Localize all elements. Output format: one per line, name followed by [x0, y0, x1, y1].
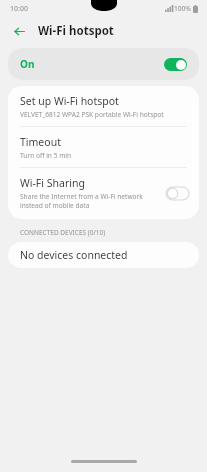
button[interactable]: On	[8, 48, 199, 80]
staticText: No devices connected	[20, 248, 128, 262]
staticText: Wi-Fi hotspot	[38, 23, 114, 39]
staticText: VELVET_6812 WPA2 PSK portable Wi-Fi hots…	[20, 110, 164, 119]
staticText: Set up Wi-Fi hotspot	[20, 94, 119, 108]
staticText: On	[20, 57, 35, 71]
button[interactable]: Back	[10, 22, 28, 40]
staticText: Wi-Fi Sharing	[20, 176, 85, 190]
staticText: CONNECTED DEVICES (0/10)	[20, 228, 106, 237]
staticText: Timeout	[20, 135, 61, 149]
button[interactable]: Wi-Fi Sharing off	[166, 187, 189, 200]
button[interactable]: Set up Wi-Fi hotspot	[8, 86, 199, 126]
button[interactable]: Wi-Fi Sharing	[8, 168, 199, 219]
button[interactable]: No devices connected	[8, 242, 199, 268]
staticText: Share the Internet from a Wi-Fi network …	[20, 192, 160, 210]
button[interactable]: Wi-Fi hotspot on	[164, 58, 187, 71]
staticText: Turn off in 5 min	[20, 151, 72, 160]
staticText: 100%	[174, 4, 191, 13]
button[interactable]: Timeout	[8, 127, 199, 167]
staticText: 10:00	[10, 4, 28, 14]
